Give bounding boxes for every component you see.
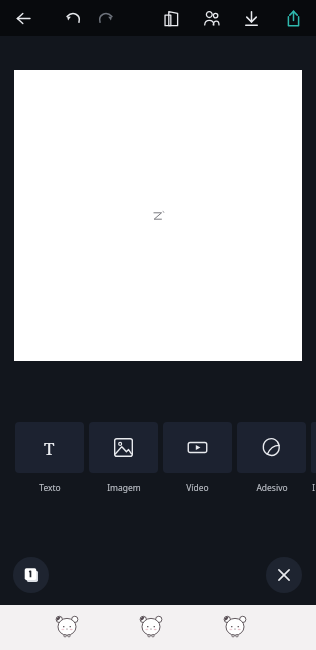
button[interactable]: Collaborators	[198, 5, 224, 31]
staticText: Texto	[39, 482, 61, 494]
button[interactable]: Close	[266, 557, 302, 593]
button[interactable]	[163, 422, 232, 473]
staticText: Adesivo	[256, 482, 288, 494]
button[interactable]: Download	[238, 5, 264, 31]
button[interactable]: Back	[10, 5, 36, 31]
button[interactable]: Layers	[13, 557, 49, 593]
staticText: T	[44, 437, 55, 458]
staticText: Imagem	[107, 482, 141, 494]
staticText: I	[312, 482, 315, 493]
button[interactable]	[89, 422, 158, 473]
button[interactable]: Undo	[60, 5, 86, 31]
staticText: Vídeo	[186, 482, 209, 494]
button[interactable]: Duplicate page	[158, 5, 184, 31]
button[interactable]: Redo	[92, 5, 118, 31]
button[interactable]: Share	[280, 5, 306, 31]
button[interactable]: T	[15, 422, 84, 473]
button[interactable]	[237, 422, 306, 473]
